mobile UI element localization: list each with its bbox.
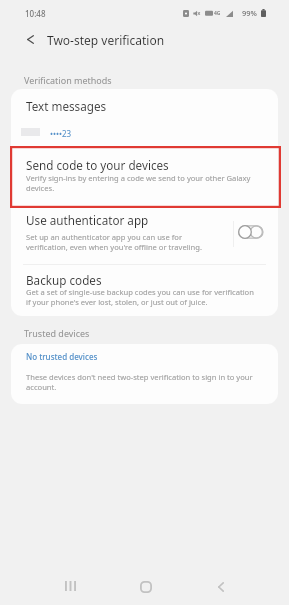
staticText: These devices don't need two-step verifi… xyxy=(26,372,258,392)
staticText: Two-step verification xyxy=(47,32,165,48)
button[interactable]: Home xyxy=(124,563,172,605)
staticText: 99% xyxy=(242,8,257,18)
staticText: Verification methods xyxy=(24,74,112,86)
staticText: 4G xyxy=(214,10,221,17)
staticText: Verify sign-ins by entering a code we se… xyxy=(26,173,258,193)
staticText: Text messages xyxy=(26,98,107,114)
staticText: Set up an authenticator app you can use … xyxy=(26,232,218,252)
button[interactable]: Back xyxy=(200,563,248,605)
staticText: Get a set of single-use backup codes you… xyxy=(26,287,258,307)
button[interactable]: Backup codes xyxy=(11,265,278,316)
staticText: Use authenticator app xyxy=(26,212,149,228)
button[interactable]: Send code to your devices xyxy=(11,148,278,207)
staticText: ••••23 xyxy=(50,128,72,139)
staticText: Send code to your devices xyxy=(26,157,169,173)
staticText: 10:48 xyxy=(25,8,46,19)
button[interactable]: Use authenticator app xyxy=(11,208,278,264)
staticText: No trusted devices xyxy=(26,351,98,362)
button[interactable]: Use authenticator app switch xyxy=(234,220,267,244)
button[interactable]: Text messages xyxy=(11,89,278,145)
staticText: Backup codes xyxy=(26,272,102,288)
button[interactable]: No trusted devices xyxy=(11,344,278,404)
button[interactable]: Recent apps xyxy=(46,563,94,605)
staticText: Trusted devices xyxy=(24,327,90,339)
button[interactable]: Back xyxy=(19,28,41,50)
